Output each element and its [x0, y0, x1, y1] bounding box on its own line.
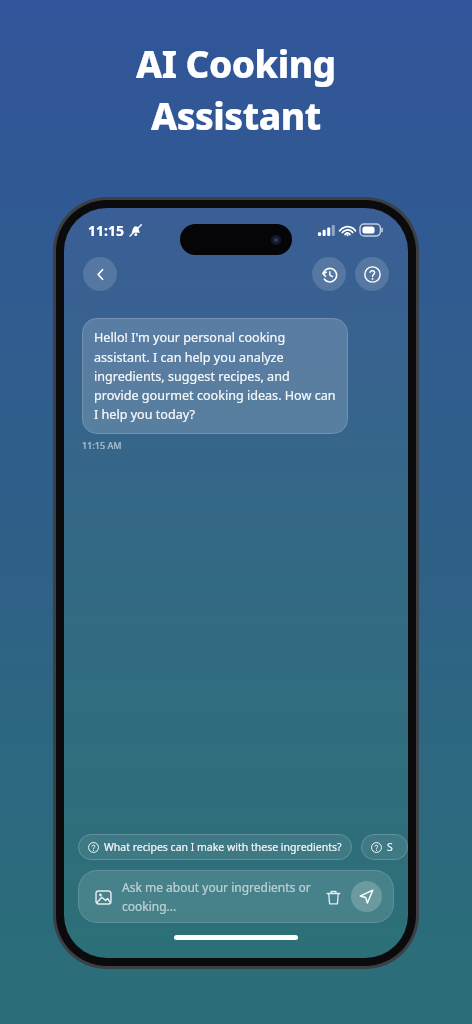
staticText: Hello! I'm your personal cooking assista… — [94, 329, 336, 423]
staticText: AI Cooking — [136, 38, 336, 88]
button[interactable]: Suggest a gourmet dish — [361, 834, 408, 860]
staticText: 11:15 AM — [82, 439, 122, 451]
button[interactable]: History — [312, 257, 346, 291]
button[interactable]: Attach image — [78, 870, 394, 923]
staticText: Assistant — [151, 90, 321, 140]
button[interactable]: Back — [83, 257, 117, 291]
button[interactable]: Clear — [319, 883, 347, 911]
button[interactable]: Help — [355, 257, 389, 291]
button[interactable]: What recipes can I make with these ingre… — [78, 834, 352, 860]
button[interactable]: Send — [351, 881, 382, 912]
staticText: Suggest a gourmet dish — [387, 840, 398, 854]
staticText: What recipes can I make with these ingre… — [104, 840, 342, 854]
staticText: Ask me about your ingredients or cooking… — [122, 879, 313, 914]
staticText: 11:15 — [88, 221, 124, 240]
button[interactable]: Attach image — [90, 884, 116, 910]
button[interactable]: Hello! I'm your personal cooking assista… — [82, 318, 348, 434]
